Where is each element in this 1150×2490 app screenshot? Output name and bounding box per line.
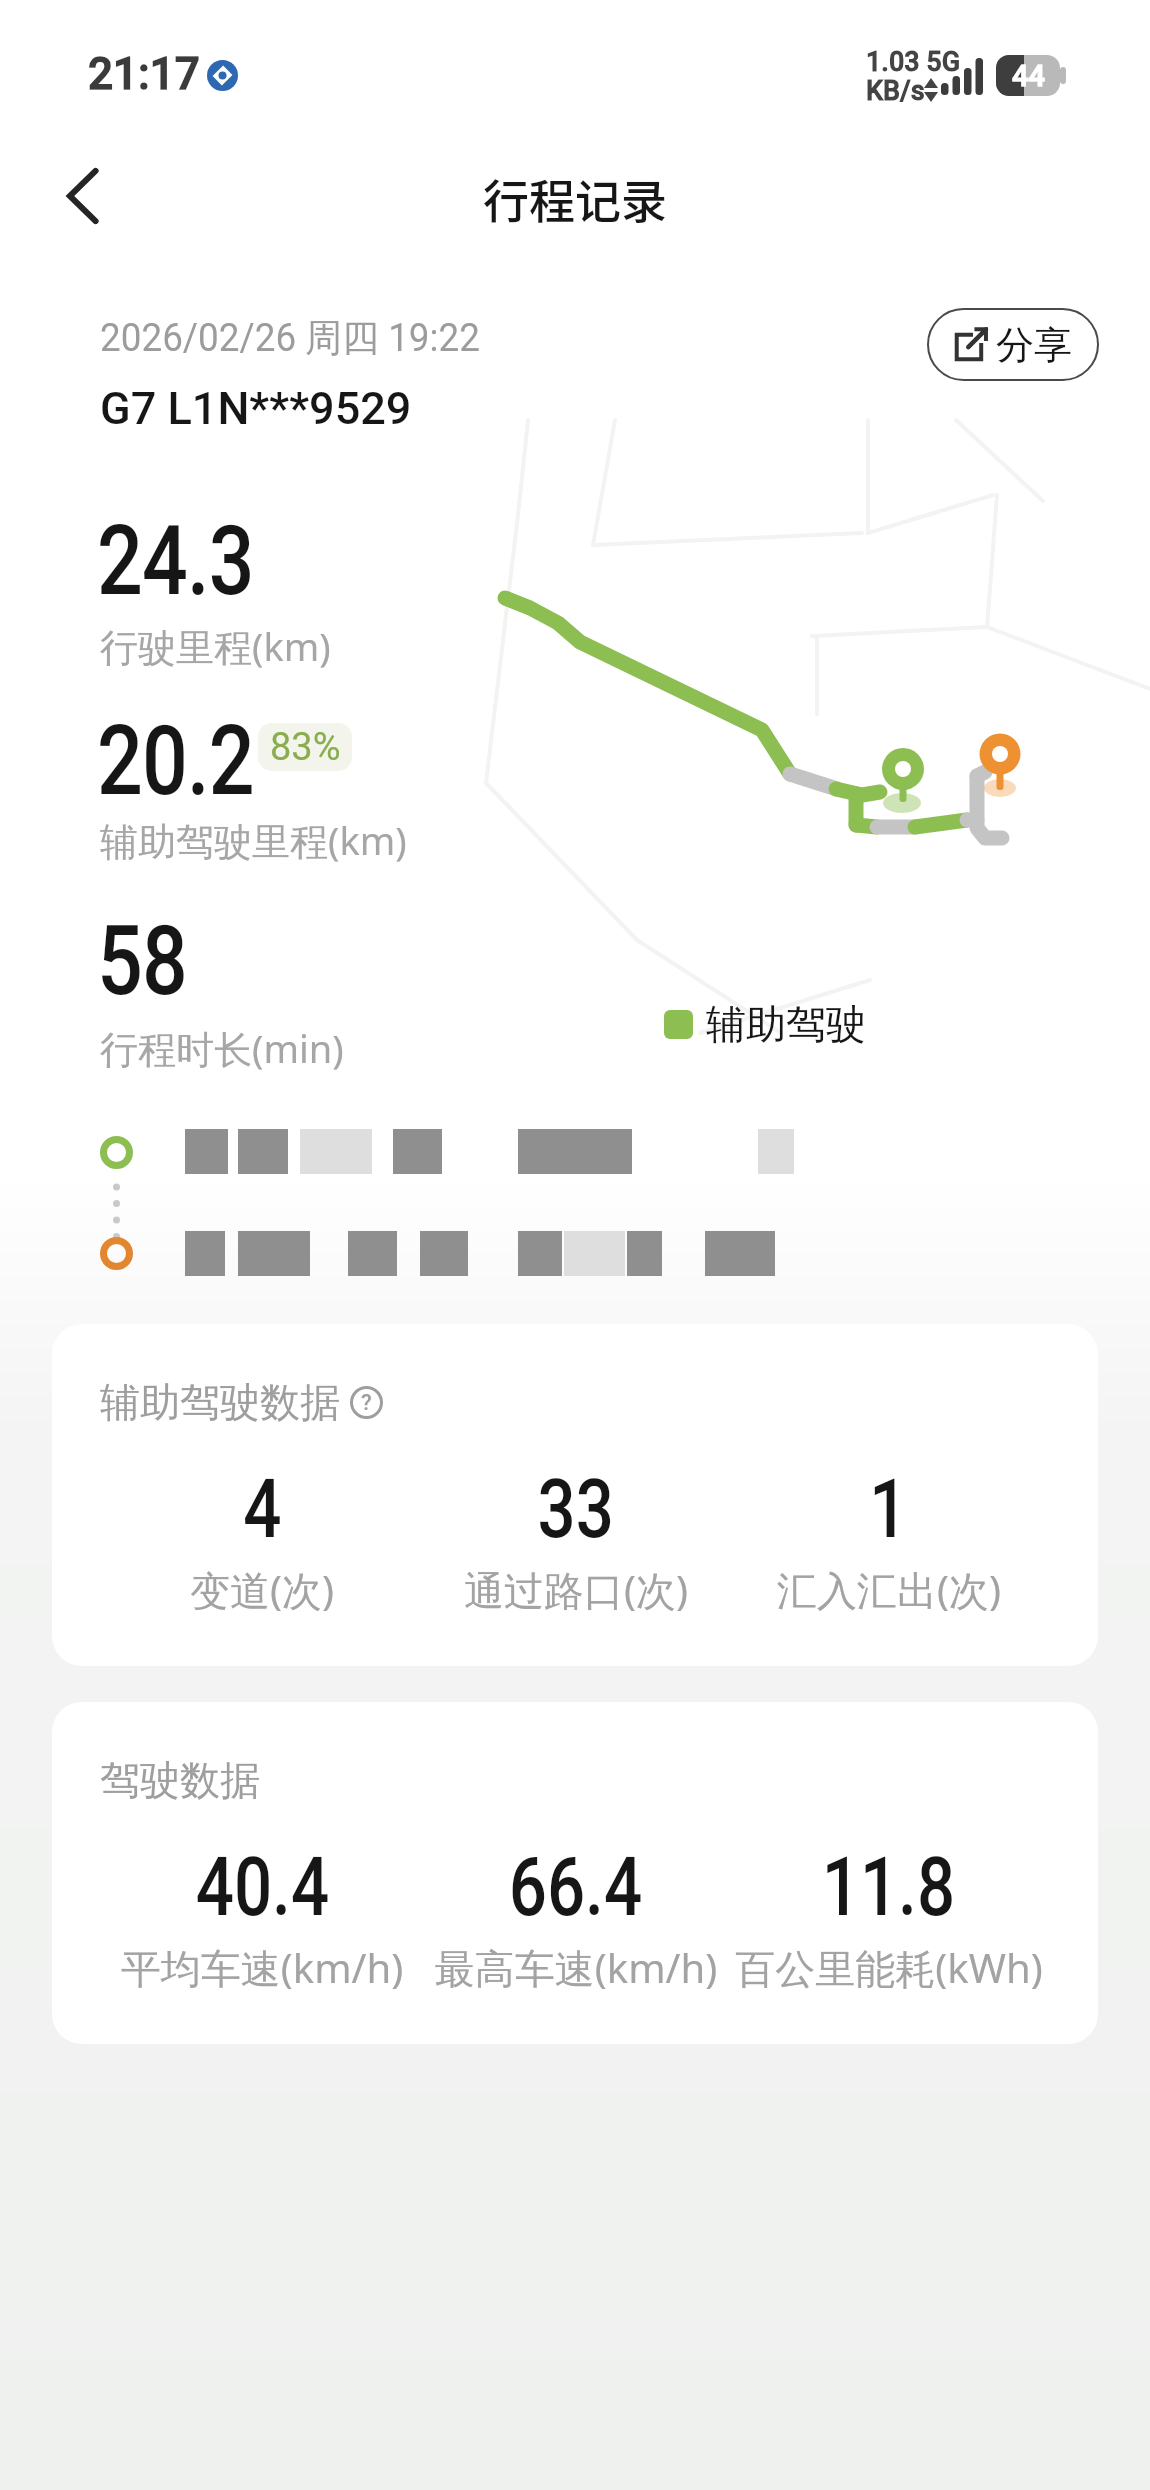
staticText: 行程时长(min) — [100, 1022, 344, 1074]
staticText: 1 — [869, 1461, 908, 1557]
staticText: 1.03 5G — [866, 46, 961, 78]
staticText: 行程记录 — [483, 165, 667, 232]
staticText: 变道(次) — [52, 1562, 472, 1617]
staticText: G7 L1N***9529 — [100, 382, 412, 435]
staticText: 20.2 — [97, 705, 254, 818]
staticText: 百公里能耗(kWh) — [679, 1940, 1098, 1995]
button[interactable] — [54, 163, 120, 229]
staticText: 11.8 — [822, 1839, 955, 1935]
staticText: 平均车速(km/h) — [52, 1940, 472, 1995]
staticText: 40.4 — [196, 1839, 329, 1935]
staticText: 66.4 — [509, 1839, 642, 1935]
staticText: 83% — [270, 725, 341, 770]
staticText: 汇入汇出(次) — [679, 1562, 1098, 1617]
staticText: 辅助驾驶 — [706, 999, 866, 1049]
staticText: 33 — [537, 1461, 615, 1557]
staticText: 58 — [97, 905, 188, 1018]
staticText: 分享 — [996, 321, 1072, 369]
button[interactable]: 分享 — [927, 308, 1099, 381]
staticText: 辅助驾驶里程(km) — [100, 814, 407, 866]
staticText: 44 — [1012, 59, 1045, 93]
staticText: 24.3 — [97, 505, 254, 618]
staticText: 4 — [243, 1461, 282, 1557]
staticText: 驾驶数据 — [100, 1755, 260, 1805]
staticText: 行驶里程(km) — [100, 620, 331, 672]
staticText: 通过路口(次) — [366, 1562, 786, 1617]
staticText: ? — [361, 1390, 372, 1416]
staticText: 2026/02/26 周四 19:22 — [100, 314, 480, 362]
staticText: 21:17 — [88, 48, 200, 100]
staticText: KB/s — [866, 75, 925, 107]
staticText: 最高车速(km/h) — [366, 1940, 786, 1995]
staticText: 辅助驾驶数据 — [100, 1377, 340, 1427]
